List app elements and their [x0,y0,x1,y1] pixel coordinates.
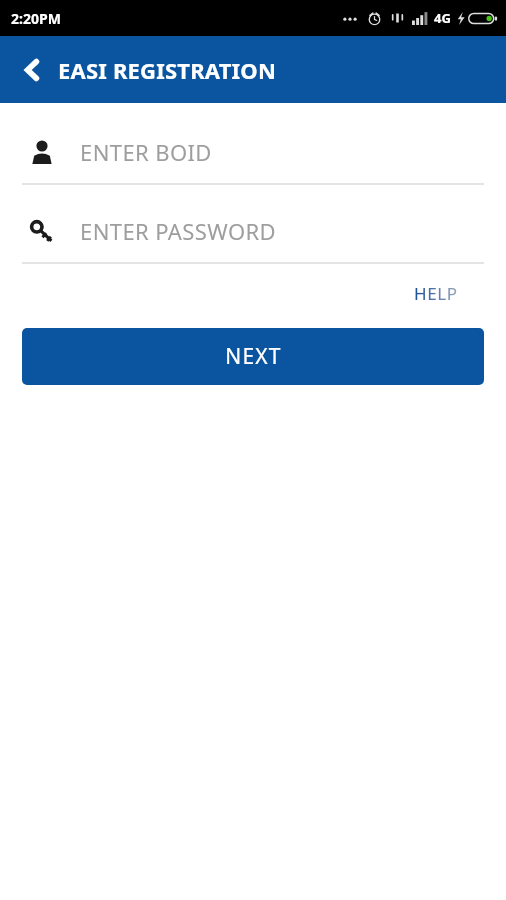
staticText: ENTER PASSWORD [80,216,277,246]
button[interactable]: Account [22,132,484,172]
staticText: EASI REGISTRATION [58,55,277,85]
other: Account [22,139,62,165]
staticText: NEXT [225,342,282,371]
staticText: 2:20PM [11,9,61,28]
button[interactable]: HELP [412,280,460,307]
button[interactable]: NEXT [22,328,484,385]
staticText: ENTER BOID [80,137,212,167]
button[interactable]: Password [22,211,484,251]
button[interactable]: Back [10,48,54,92]
staticText: 4G [434,9,451,27]
staticText: HELP [414,282,458,305]
other: Password [22,218,62,244]
